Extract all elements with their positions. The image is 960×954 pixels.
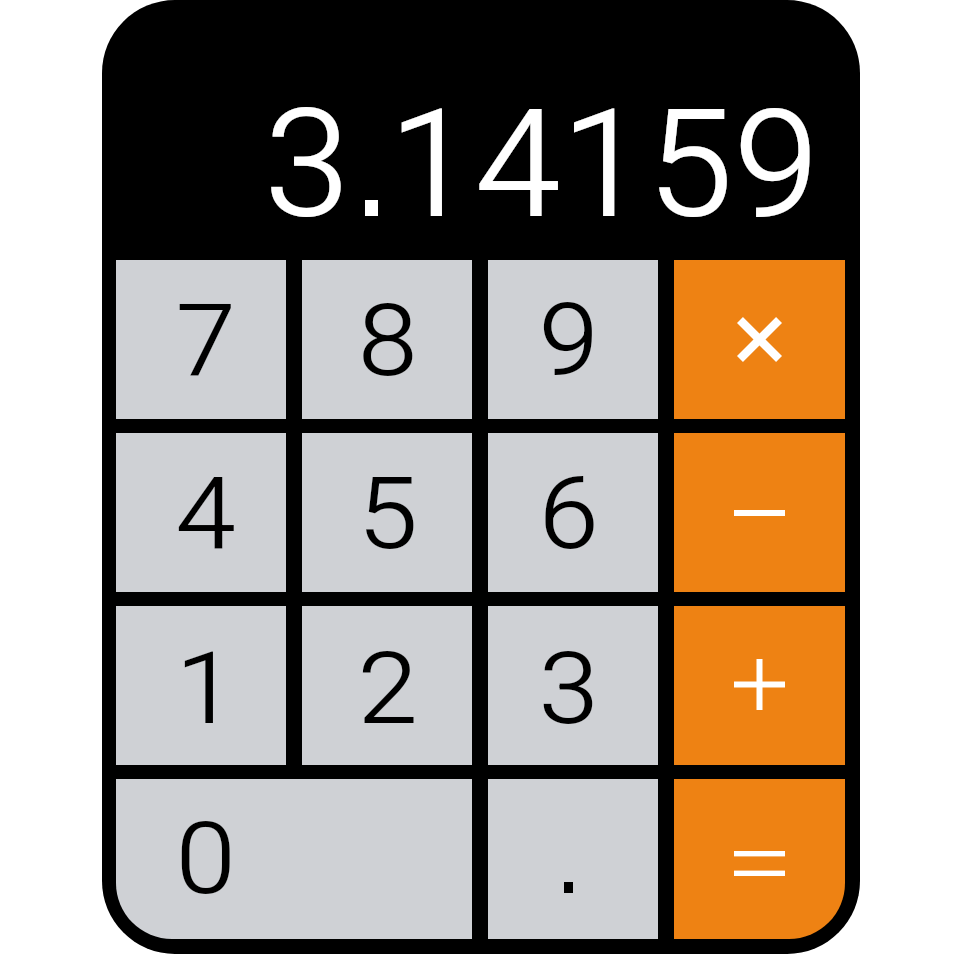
button[interactable]: 4 (116, 433, 286, 592)
button[interactable]: 3 (488, 606, 658, 765)
staticText: 3 (538, 631, 599, 748)
button[interactable]: 1 (116, 606, 286, 765)
staticText: 1 (175, 631, 236, 748)
staticText: 4 (175, 456, 236, 573)
button[interactable]: Multiply (674, 260, 845, 419)
button[interactable]: 2 (302, 606, 472, 765)
button[interactable]: Equals (674, 779, 845, 939)
staticText: 0 (175, 801, 236, 918)
staticText: 7 (175, 283, 236, 400)
button[interactable]: 5 (302, 433, 472, 592)
button[interactable]: Add (674, 606, 845, 765)
staticText: 2 (357, 631, 418, 748)
staticText: 8 (357, 283, 418, 400)
button[interactable]: 9 (488, 260, 658, 419)
button[interactable]: 0 (116, 779, 472, 939)
button[interactable]: Subtract (674, 433, 845, 592)
button[interactable]: 6 (488, 433, 658, 592)
button[interactable]: 8 (302, 260, 472, 419)
staticText: 9 (538, 283, 599, 400)
staticText: 5 (357, 456, 418, 573)
staticText: 6 (538, 456, 599, 573)
button[interactable]: 7 (116, 260, 286, 419)
button[interactable]: 3.14159 (102, 0, 860, 260)
staticText: 3.14159 (264, 77, 820, 253)
button[interactable]: Decimal point (488, 779, 658, 939)
